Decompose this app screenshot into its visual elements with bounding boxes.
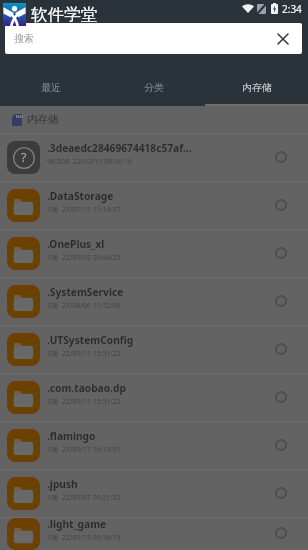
- staticText: 1项 23/07/15 11:14:37: [47, 205, 121, 215]
- staticText: .light_game: [47, 517, 107, 531]
- button[interactable]: Select item: [268, 145, 294, 171]
- staticText: 搜索: [14, 32, 34, 45]
- button[interactable]: .UTSystemConfig: [0, 326, 308, 373]
- button[interactable]: 搜索: [5, 23, 302, 54]
- button[interactable]: .light_game: [0, 518, 308, 550]
- staticText: 内存储: [27, 113, 59, 126]
- button[interactable]: Select item: [268, 241, 294, 267]
- staticText: .DataStorage: [47, 189, 114, 203]
- staticText: 1项 22/03/15 09:36:19: [47, 533, 121, 543]
- button[interactable]: 内存储: [0, 106, 308, 133]
- staticText: .flamingo: [47, 429, 96, 443]
- other: Clear search: [278, 34, 288, 44]
- staticText: ?: [21, 149, 27, 166]
- staticText: 2项 22/03/11 13:51:22: [47, 397, 121, 407]
- staticText: 1项 23/03/17 16:13:51: [47, 445, 121, 455]
- staticText: 内存储: [242, 81, 272, 94]
- button[interactable]: .com.taobao.dp: [0, 374, 308, 421]
- button[interactable]: .SystemService: [0, 278, 308, 325]
- staticText: 最近: [41, 81, 61, 94]
- staticText: 1项 22/03/02 09:44:25: [47, 253, 121, 263]
- staticText: 2项 22/03/11 13:51:22: [47, 349, 121, 359]
- button[interactable]: 内存储: [205, 54, 308, 104]
- staticText: .jpush: [47, 477, 78, 491]
- button[interactable]: .flamingo: [0, 422, 308, 469]
- staticText: 2项 23/04/06 11:32:00: [47, 301, 121, 311]
- button[interactable]: .OnePlus_xl: [0, 230, 308, 277]
- staticText: .UTSystemConfig: [47, 333, 134, 347]
- staticText: .3deaedc28469674418c57af...: [47, 141, 192, 155]
- button[interactable]: Select item: [268, 337, 294, 363]
- staticText: .SystemService: [47, 285, 124, 299]
- button[interactable]: .DataStorage: [0, 182, 308, 229]
- button[interactable]: 最近: [0, 54, 102, 104]
- button[interactable]: Select item: [268, 481, 294, 507]
- staticText: 软件学堂: [31, 4, 97, 25]
- button[interactable]: 分类: [102, 54, 205, 104]
- staticText: 1项 22/03/07 09:21:02: [47, 493, 121, 503]
- button[interactable]: ?: [0, 134, 308, 181]
- staticText: .OnePlus_xl: [47, 237, 105, 251]
- staticText: 96.00B 22/03/15 09:36:16: [47, 157, 132, 167]
- button[interactable]: Select item: [268, 433, 294, 459]
- staticText: 2:34: [282, 2, 302, 16]
- button[interactable]: Select item: [268, 289, 294, 315]
- staticText: .com.taobao.dp: [47, 381, 126, 395]
- button[interactable]: Select item: [268, 193, 294, 219]
- staticText: 分类: [144, 81, 164, 94]
- button[interactable]: .jpush: [0, 470, 308, 517]
- button[interactable]: Select item: [268, 385, 294, 411]
- button[interactable]: Select item: [268, 521, 294, 547]
